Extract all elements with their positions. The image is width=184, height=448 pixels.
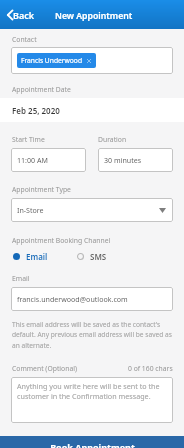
staticText: Anything you write here will be sent to … [17,381,167,401]
button[interactable]: Email [13,251,48,262]
button[interactable]: Francis Underwood [17,53,96,68]
button[interactable]: Feb 25, 2020 [0,98,184,122]
button[interactable]: Book Appointment [0,436,184,448]
staticText: Appointment Booking Channel [12,236,111,245]
staticText: francis.underwood@outlook.com [17,294,128,304]
staticText: Email [12,274,30,283]
staticText: Francis Underwood [21,56,82,65]
button[interactable]: SMS [77,251,107,262]
button[interactable]: 30 minutes [98,148,173,172]
button[interactable]: francis.underwood@outlook.com [11,287,173,311]
staticText: New Appointment [55,10,133,22]
button[interactable]: In-Store [11,198,173,222]
staticText: Back [13,9,35,21]
staticText: Appointment Type [12,185,71,194]
staticText: Appointment Date [12,85,71,94]
staticText: Email [26,251,48,262]
staticText: SMS [90,251,107,262]
staticText: Contact [12,35,37,44]
staticText: Start Time [12,135,45,144]
button[interactable]: Francis Underwood [11,47,173,74]
staticText: Book Appointment [50,441,135,448]
staticText: Feb 25, 2020 [12,105,60,116]
other: Remove contact [87,59,91,63]
staticText: 30 minutes [104,155,142,165]
staticText: 11:00 AM [17,155,48,165]
staticText: In-Store [17,205,44,215]
button[interactable]: Back [4,9,35,21]
staticText: This email address will be saved as the … [12,320,184,350]
button[interactable]: Anything you write here will be sent to … [11,377,173,423]
other: Open appointment type list [159,208,166,213]
staticText: Comment (Optional) [12,364,78,373]
staticText: Duration [98,135,127,144]
staticText: 0 of 160 chars [128,364,173,373]
button[interactable]: 11:00 AM [11,148,86,172]
